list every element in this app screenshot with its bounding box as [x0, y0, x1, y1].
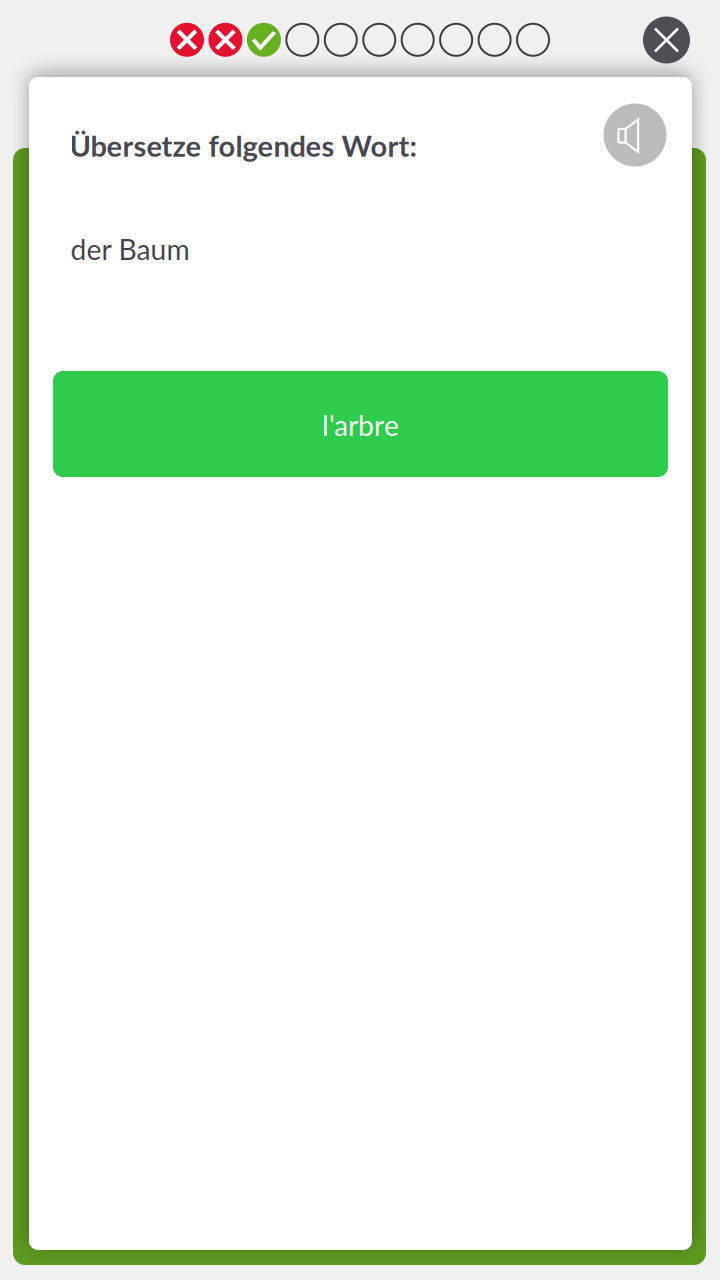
button[interactable]: Close [643, 16, 690, 63]
staticText: der Baum [70, 232, 189, 266]
button[interactable]: Play pronunciation [603, 103, 666, 166]
staticText: Übersetze folgendes Wort: [69, 128, 416, 163]
button[interactable]: l'arbre [53, 371, 668, 477]
staticText: l'arbre [322, 408, 399, 442]
